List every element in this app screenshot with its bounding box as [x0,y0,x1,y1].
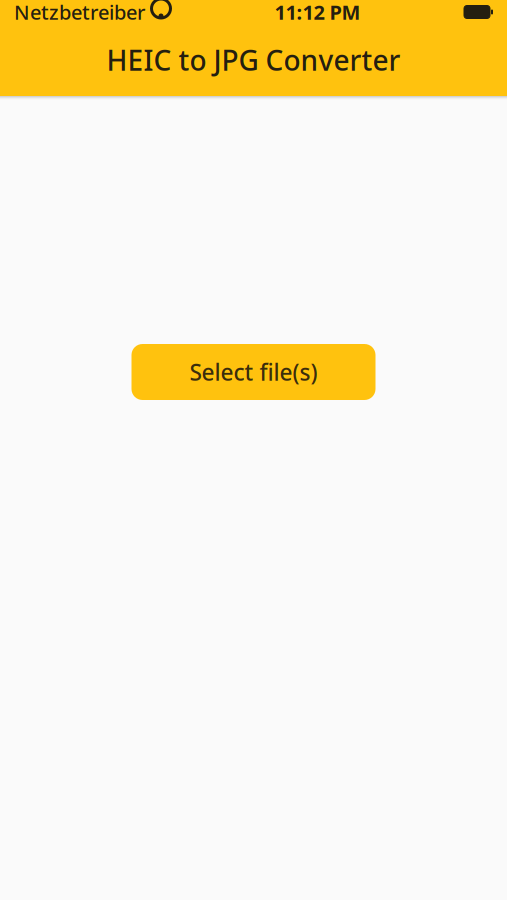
button[interactable]: Select file(s) [131,344,375,400]
staticText: 11:12 PM [274,0,360,25]
staticText: Netzbetreiber [14,0,145,25]
staticText: HEIC to JPG Converter [106,41,400,79]
staticText: Select file(s) [189,357,317,387]
